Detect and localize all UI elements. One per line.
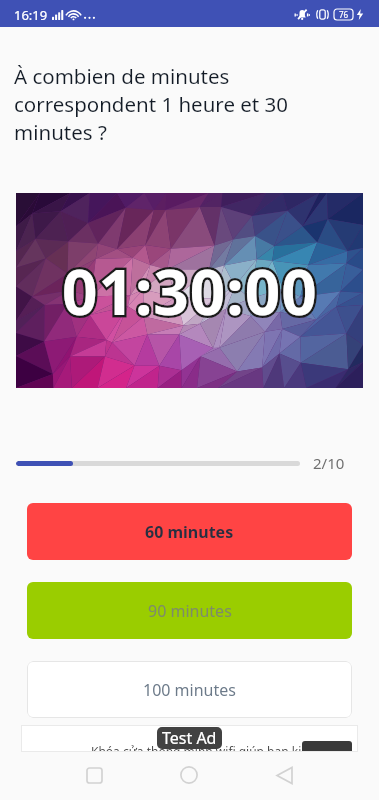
staticText: 76 (339, 9, 349, 20)
button[interactable]: Back (267, 758, 301, 792)
staticText: 90 minutes (148, 600, 232, 622)
staticText: 60 minutes (145, 521, 234, 543)
staticText: 2/10 (313, 453, 345, 473)
staticText: 01:30:00 (62, 249, 318, 333)
staticText: À combien de minutes correspondent 1 heu… (14, 62, 357, 146)
staticText: 01:30:00 (62, 249, 318, 333)
staticText: Test Ad (162, 727, 217, 749)
button[interactable]: Home (172, 758, 206, 792)
staticText: 100 minutes (143, 679, 236, 701)
button[interactable]: Recents (77, 758, 111, 792)
button[interactable]: 60 minutes (27, 503, 352, 560)
button[interactable]: 90 minutes (27, 582, 352, 639)
button[interactable]: Khóa cửa thông minh wifi giúp bạn ki (21, 725, 358, 752)
button[interactable]: 100 minutes (27, 661, 352, 718)
staticText: Khóa cửa thông minh wifi giúp bạn ki (91, 743, 302, 752)
staticText: 16:19 (14, 6, 48, 24)
